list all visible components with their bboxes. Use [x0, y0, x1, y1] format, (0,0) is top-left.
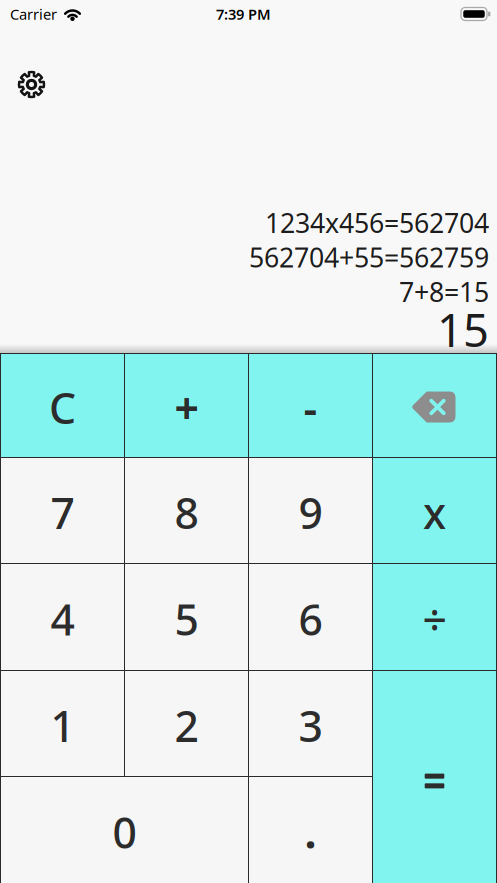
button[interactable]: -	[249, 354, 372, 457]
button[interactable]: 2	[125, 671, 248, 776]
button[interactable]: 5	[125, 564, 248, 670]
staticText: C	[49, 379, 76, 436]
staticText: 15	[437, 299, 489, 359]
staticText: 1234x456=562704	[265, 205, 489, 240]
staticText: 8	[174, 484, 198, 541]
button[interactable]: 4	[1, 564, 124, 670]
staticText: x	[423, 484, 446, 541]
button[interactable]: Equals	[373, 671, 496, 883]
staticText: 4	[50, 591, 74, 647]
button[interactable]: 1	[1, 671, 124, 776]
staticText: ÷	[422, 591, 446, 647]
button[interactable]: Settings	[18, 71, 45, 98]
button[interactable]: Delete	[373, 354, 496, 457]
staticText: 0	[112, 804, 136, 860]
button[interactable]: 7	[1, 458, 124, 563]
staticText: 5	[174, 591, 198, 647]
staticText: -	[303, 379, 317, 436]
staticText: 1	[50, 697, 74, 754]
staticText: 7:39 PM	[216, 4, 271, 24]
staticText: 562704+55=562759	[249, 239, 489, 275]
staticText: +	[174, 379, 198, 436]
staticText: 2	[174, 697, 198, 754]
button[interactable]: 6	[249, 564, 372, 670]
button[interactable]: .	[249, 777, 372, 883]
button[interactable]: ÷	[373, 564, 496, 670]
staticText: 7	[50, 484, 74, 541]
button[interactable]: +	[125, 354, 248, 457]
staticText: 3	[298, 697, 322, 754]
button[interactable]: x	[373, 458, 496, 563]
staticText: 7+8=15	[399, 274, 489, 309]
button[interactable]: C	[1, 354, 124, 457]
button[interactable]: 3	[249, 671, 372, 776]
staticText: 6	[298, 591, 322, 647]
staticText: 9	[298, 484, 322, 541]
staticText: .	[304, 804, 316, 860]
staticText: Carrier	[10, 4, 57, 24]
button[interactable]: 9	[249, 458, 372, 563]
button[interactable]: 0	[1, 777, 248, 883]
button[interactable]: 8	[125, 458, 248, 563]
